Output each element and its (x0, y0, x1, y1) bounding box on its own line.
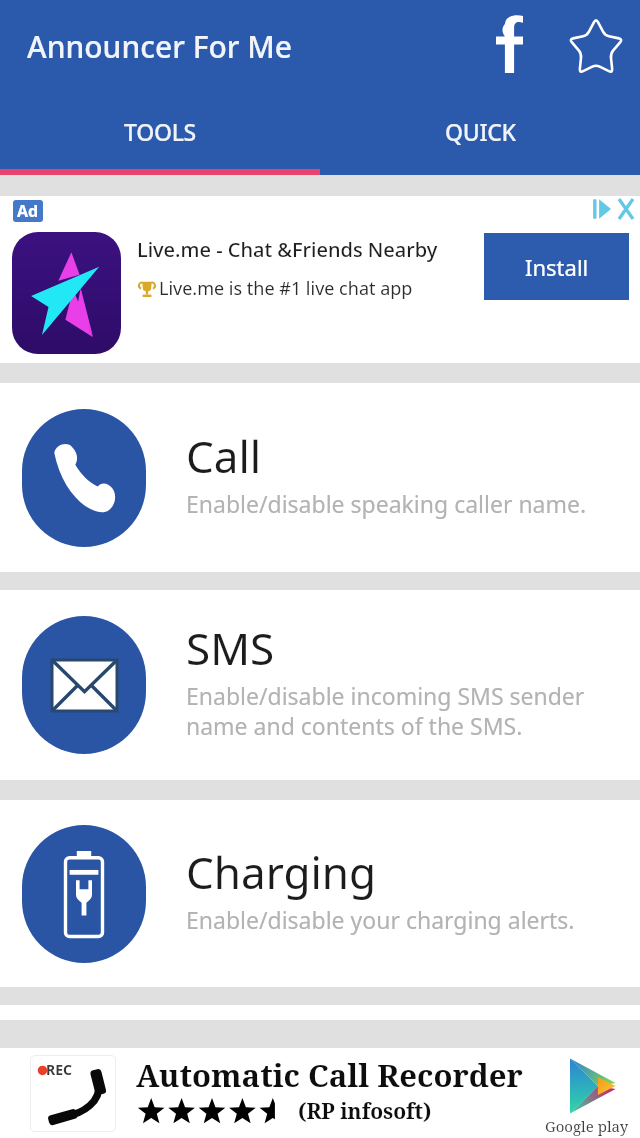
button[interactable]: Charging (0, 800, 640, 987)
button[interactable]: SMS (0, 590, 640, 780)
button[interactable]: Ad choices (590, 196, 614, 222)
staticText: REC (46, 1060, 73, 1079)
button[interactable]: Close ad (614, 196, 638, 222)
staticText: Live.me is the #1 live chat app (159, 276, 413, 301)
staticText: Google play (545, 1116, 629, 1136)
staticText: Charging (186, 842, 377, 902)
staticText: Automatic Call Recorder (136, 1054, 523, 1096)
button[interactable]: TOOLS (0, 93, 320, 169)
staticText: Call (186, 426, 262, 486)
button[interactable]: Call (0, 383, 640, 572)
staticText: Install (525, 252, 589, 282)
button[interactable]: QUICK (320, 93, 640, 169)
staticText: (RP infosoft) (298, 1097, 432, 1126)
button[interactable]: Install (484, 233, 629, 300)
staticText: Announcer For Me (27, 26, 293, 67)
button[interactable]: Live.me - Chat &Friends Nearby (0, 232, 640, 363)
button[interactable]: Facebook page (476, 0, 542, 93)
staticText: Live.me - Chat &Friends Nearby (137, 236, 438, 263)
staticText: Ad (17, 200, 39, 222)
staticText: TOOLS (124, 116, 196, 147)
staticText: Enable/disable speaking caller name. (186, 488, 587, 519)
button[interactable]: Rate this app (556, 0, 636, 93)
staticText: QUICK (445, 116, 516, 147)
button[interactable]: REC (0, 1048, 640, 1138)
staticText: SMS (186, 618, 275, 678)
staticText: Enable/disable incoming SMS sender name … (186, 680, 585, 742)
staticText: Enable/disable your charging alerts. (186, 904, 575, 935)
